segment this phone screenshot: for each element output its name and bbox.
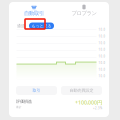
staticText: +2.3%: [93, 107, 102, 110]
staticText: 通貨: [17, 23, 25, 28]
staticText: 10.0: [98, 41, 105, 45]
staticText: 取引: [32, 88, 40, 93]
staticText: 累計: [16, 105, 22, 109]
staticText: 10.0: [98, 68, 105, 71]
staticText: 10.0: [98, 61, 105, 65]
staticText: +100,000円: [75, 99, 102, 106]
button[interactable]: 取引: [16, 86, 57, 95]
button[interactable]: もっと見る: [29, 23, 54, 29]
staticText: 10.0: [98, 28, 105, 32]
staticText: 10.0: [98, 74, 105, 78]
staticText: 評価損益: [16, 99, 32, 104]
staticText: 10.0: [98, 55, 105, 58]
staticText: 自動取引: [24, 10, 44, 17]
staticText: プロプラン: [71, 10, 96, 17]
button[interactable]: 自動売買設定: [61, 86, 102, 95]
staticText: 自動売買設定: [69, 88, 93, 93]
button[interactable]: 自動取引: [9, 4, 59, 17]
button[interactable]: プロプラン: [59, 4, 109, 17]
staticText: もっと見る: [31, 23, 51, 28]
staticText: 10.0: [98, 48, 105, 51]
staticText: 10.0: [98, 35, 105, 38]
